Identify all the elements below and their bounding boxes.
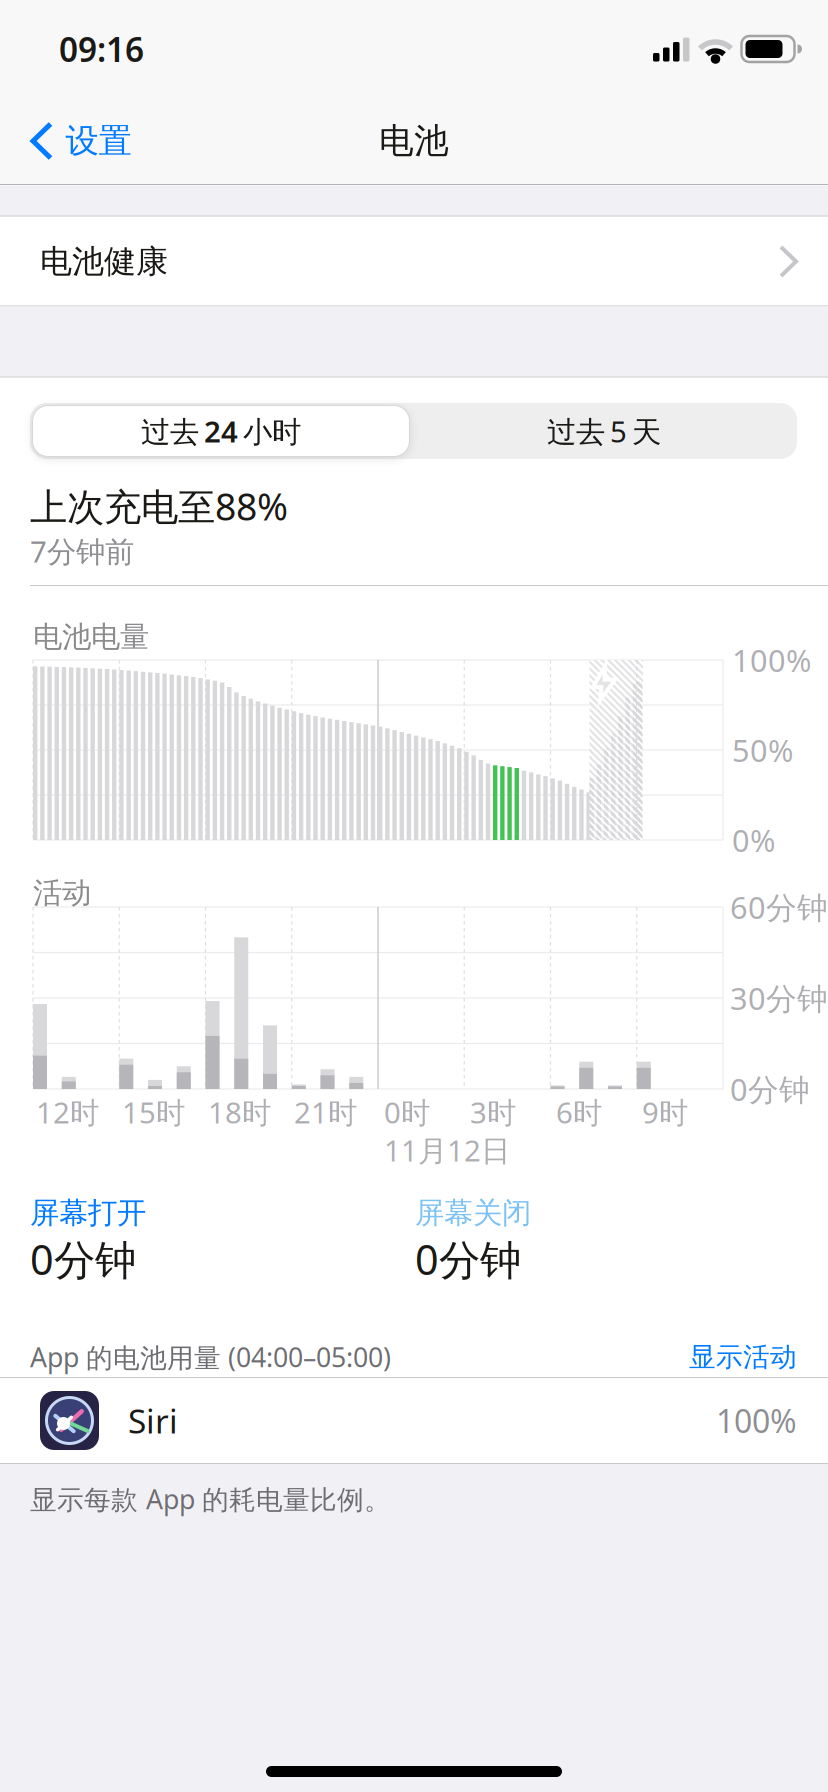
staticText: 设置 bbox=[65, 120, 131, 161]
staticText: 12时 bbox=[36, 1092, 99, 1131]
button[interactable]: 屏幕打开 bbox=[30, 1193, 350, 1285]
staticText: 0分钟 bbox=[415, 1232, 521, 1286]
staticText: 18时 bbox=[208, 1092, 271, 1131]
staticText: 屏幕关闭 bbox=[415, 1195, 531, 1231]
button[interactable]: 返回设置 bbox=[30, 120, 131, 161]
staticText: Siri bbox=[128, 1398, 178, 1443]
staticText: 0分钟 bbox=[730, 1069, 810, 1109]
button[interactable]: 显示活动 bbox=[557, 1337, 797, 1377]
staticText: 过去 24 小时 bbox=[141, 411, 301, 450]
staticText: 0分钟 bbox=[30, 1232, 136, 1286]
button[interactable]: 电池健康 bbox=[0, 217, 828, 305]
staticText: 0% bbox=[732, 820, 775, 860]
button[interactable]: Siri bbox=[0, 1378, 828, 1463]
staticText: 显示每款 App 的耗电量比例。 bbox=[30, 1481, 391, 1517]
staticText: 60分钟 bbox=[730, 887, 828, 927]
staticText: 7分钟前 bbox=[30, 531, 134, 570]
staticText: 9时 bbox=[642, 1092, 688, 1131]
staticText: 0时 bbox=[384, 1092, 430, 1131]
button[interactable]: 过去 5 天 bbox=[414, 405, 794, 457]
staticText: 电池健康 bbox=[40, 242, 168, 281]
staticText: 过去 5 天 bbox=[547, 411, 661, 450]
staticText: 100% bbox=[716, 1399, 797, 1442]
staticText: 21时 bbox=[294, 1092, 357, 1131]
staticText: 6时 bbox=[556, 1092, 602, 1131]
staticText: 30分钟 bbox=[730, 978, 828, 1018]
staticText: 上次充电至88% bbox=[30, 481, 288, 531]
staticText: 屏幕打开 bbox=[30, 1195, 146, 1231]
staticText: 50% bbox=[732, 730, 793, 770]
button[interactable]: 屏幕关闭 bbox=[415, 1193, 735, 1285]
staticText: 显示活动 bbox=[689, 1341, 797, 1373]
staticText: 电池电量 bbox=[33, 619, 149, 655]
staticText: 3时 bbox=[470, 1092, 516, 1131]
staticText: 15时 bbox=[122, 1092, 185, 1131]
button[interactable]: 过去 24 小时 bbox=[32, 405, 409, 456]
staticText: 100% bbox=[732, 640, 811, 680]
staticText: 09:16 bbox=[59, 27, 144, 71]
staticText: 电池 bbox=[379, 120, 449, 162]
staticText: 11月12日 bbox=[384, 1130, 510, 1169]
staticText: App 的电池用量 (04:00–05:00) bbox=[30, 1339, 391, 1375]
staticText: 活动 bbox=[33, 875, 91, 911]
